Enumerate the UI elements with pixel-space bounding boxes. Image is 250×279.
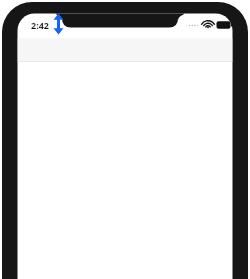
button[interactable]: Wi-Fi [200,18,218,34]
button[interactable]: Scroll indicator [52,12,66,36]
button[interactable]: Battery [215,18,233,32]
